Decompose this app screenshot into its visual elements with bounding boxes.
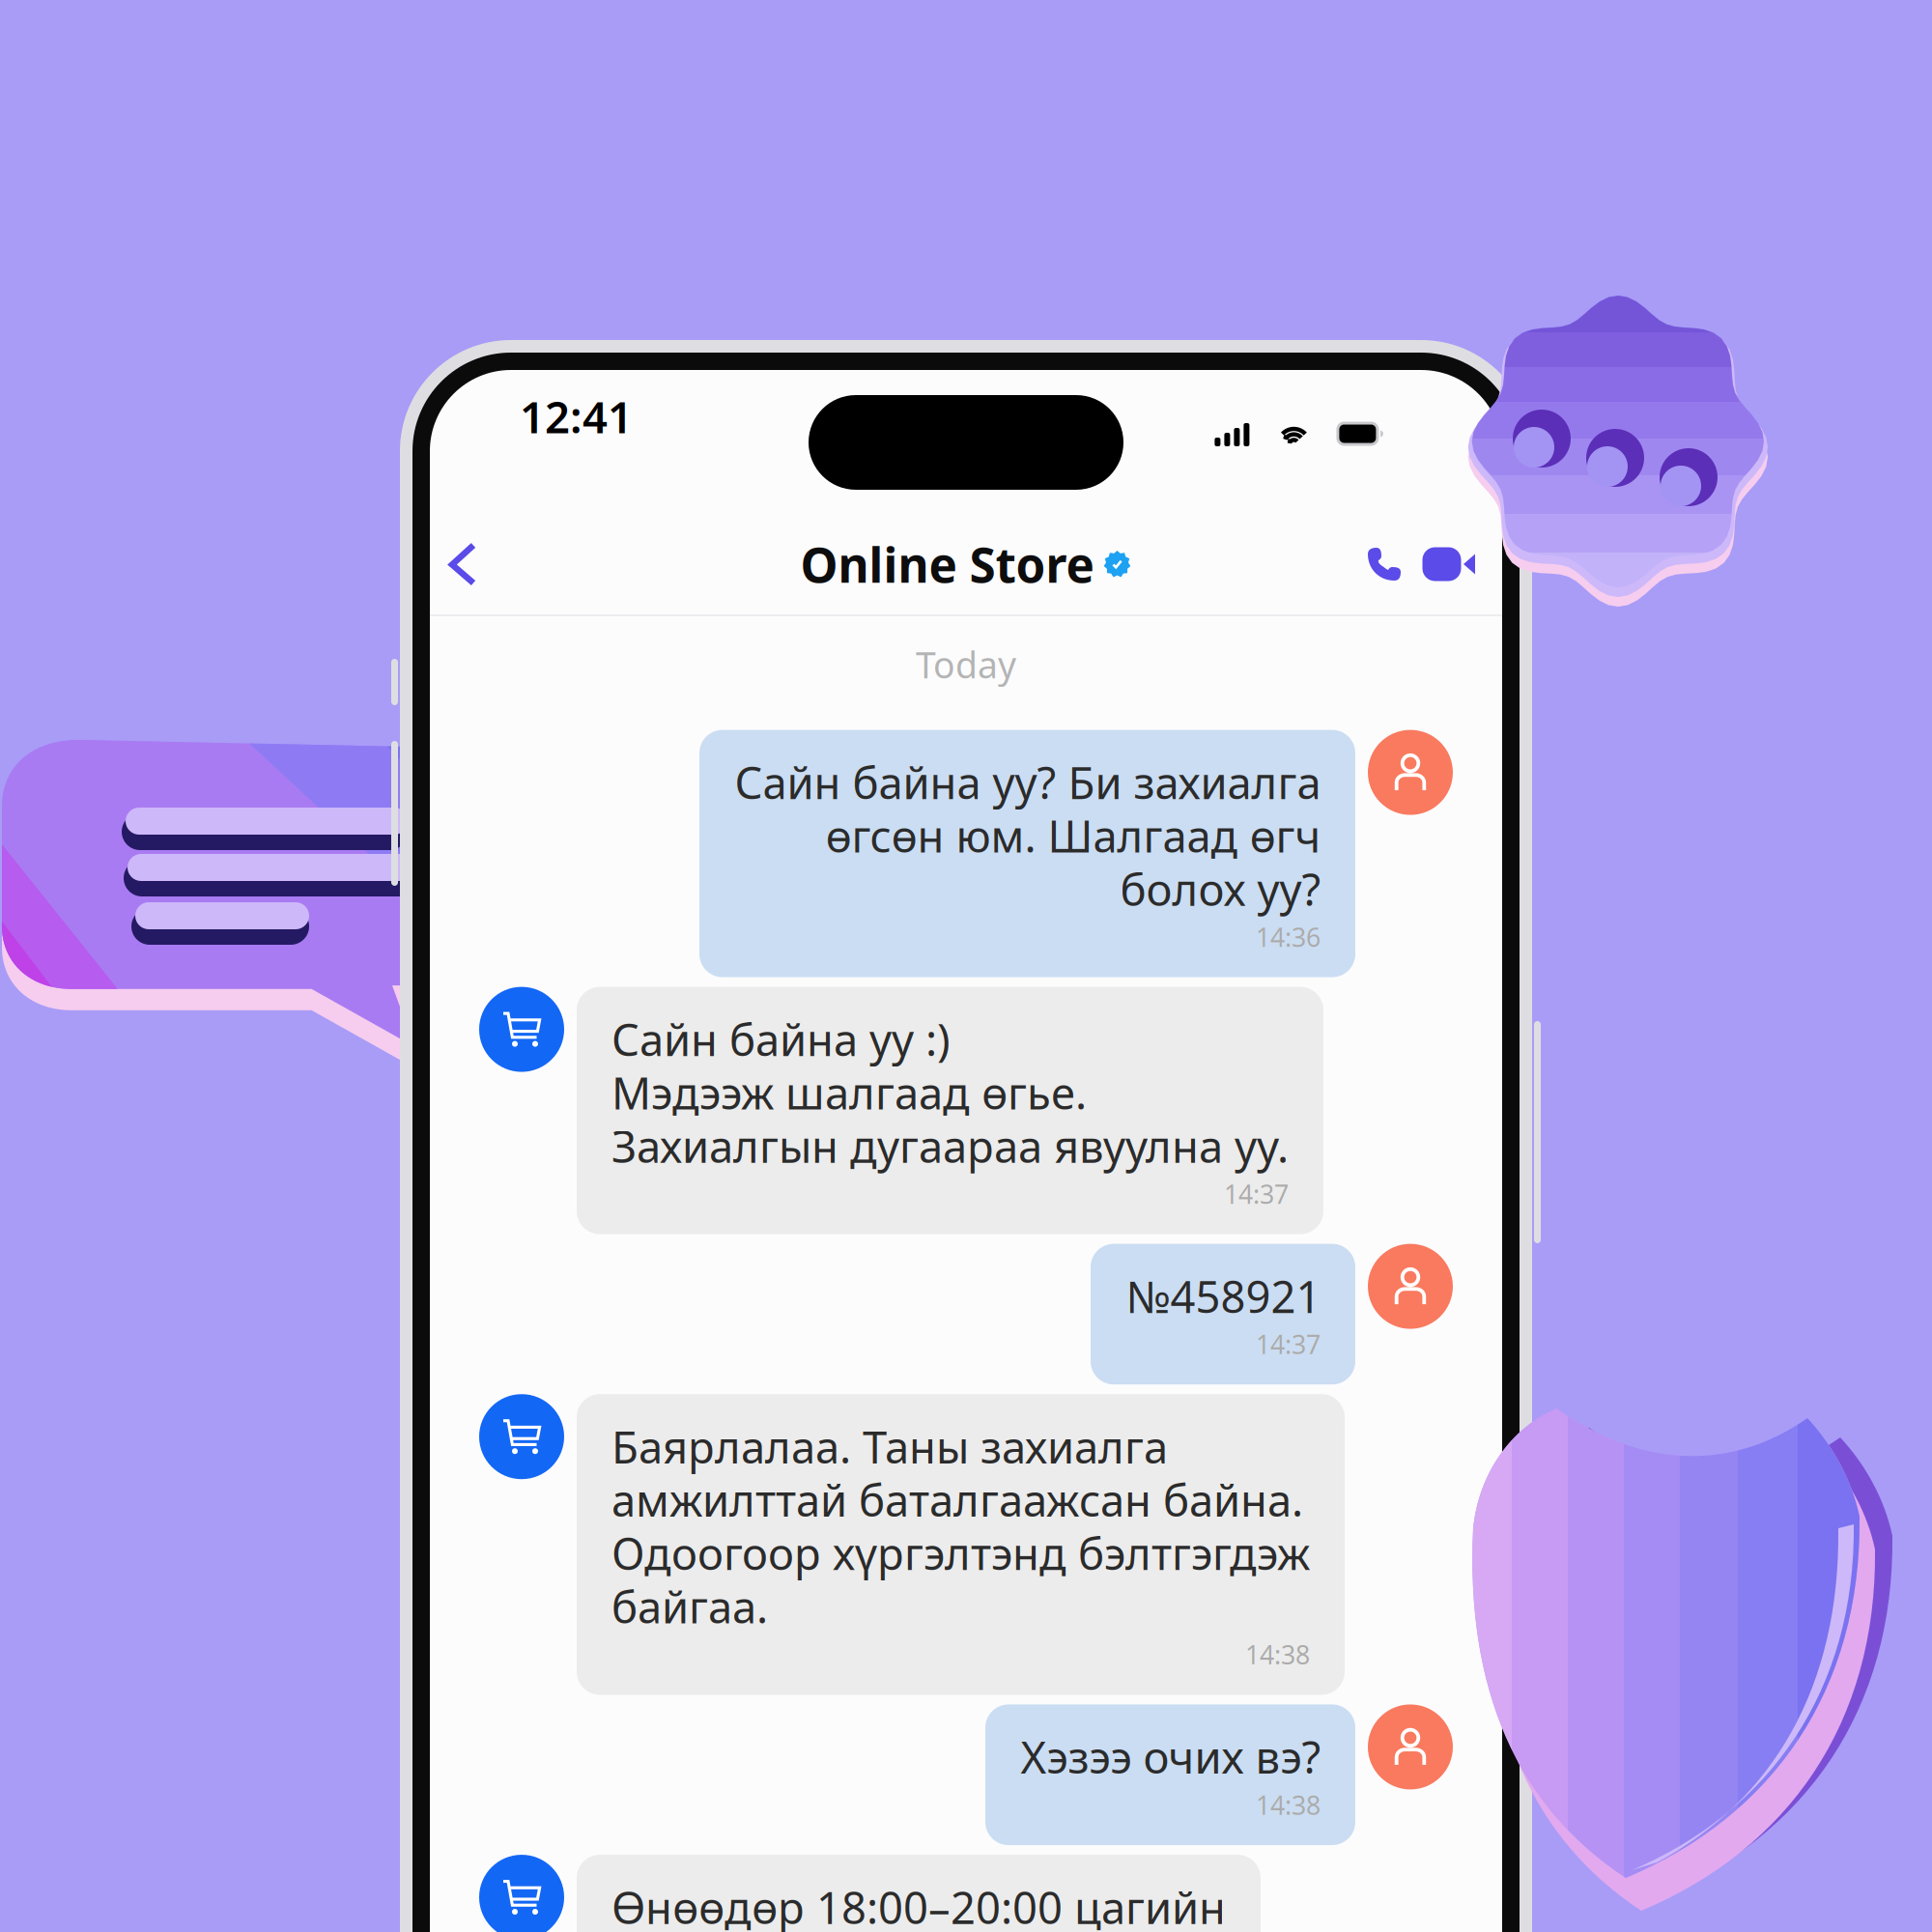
staticText: Өнөөдөр 18:00–20:00 цагийн хооронд хүргэ… [611,1878,1226,1932]
button[interactable]: Video call [1413,527,1485,601]
staticText: 12:41 [520,387,633,445]
staticText: 14:36 [1256,920,1321,954]
staticText: №458921 [1125,1267,1321,1325]
staticText: 14:37 [1256,1327,1321,1361]
staticText: 14:38 [1245,1637,1310,1672]
staticText: Сайн байна уу? Би захиалга өгсөн юм. Шал… [734,753,1321,918]
button[interactable]: Call [1355,527,1413,601]
staticText: 14:38 [1256,1788,1321,1822]
staticText: Today [916,640,1016,688]
button[interactable]: Back [447,527,511,601]
staticText: 14:37 [1224,1177,1289,1211]
staticText: Сайн байна уу :) Мэдээж шалгаад өгье. За… [611,1010,1289,1175]
staticText: Online Store [800,532,1094,596]
staticText: Баярлалаа. Таны захиалга амжилттай батал… [611,1417,1310,1635]
staticText: Хэзээ очих вэ? [1020,1728,1321,1786]
